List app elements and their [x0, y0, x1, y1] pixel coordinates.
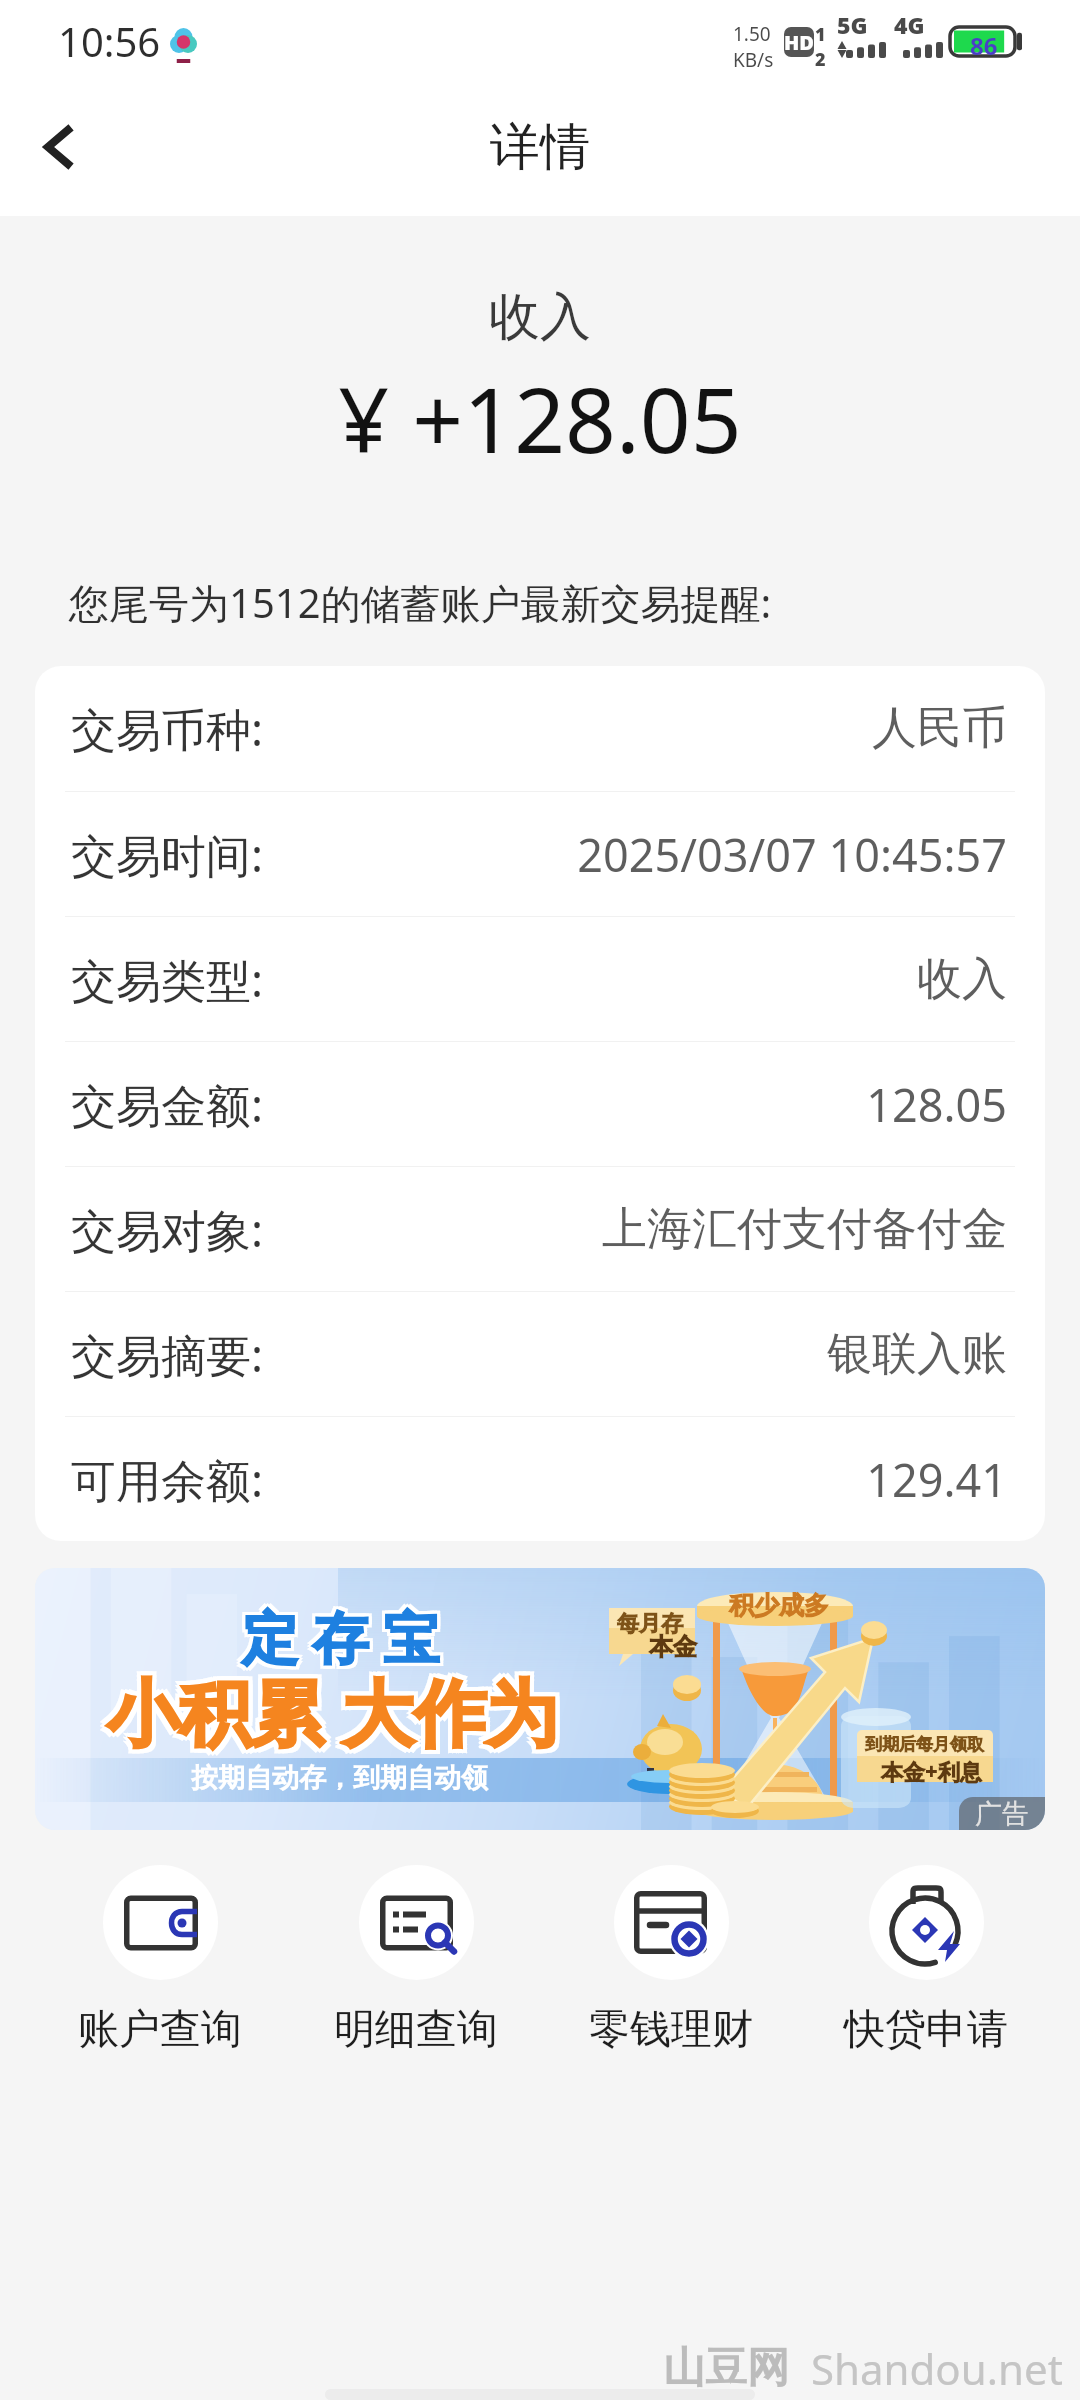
staticText: 按期自动存，到期自动领 [191, 1761, 488, 1795]
staticText: 128.05 [274, 1074, 1007, 1135]
staticText: 4G [894, 9, 925, 40]
staticText: 定 存 宝 [239, 1598, 437, 1674]
staticText: 129.41 [274, 1449, 1007, 1510]
staticText: 定 存 宝 [245, 1601, 443, 1677]
staticText: 快贷申请 [844, 2004, 1008, 2056]
staticText: 86 [970, 29, 998, 60]
staticText: 交易金额: [71, 1074, 264, 1135]
staticText: 上海汇付支付备付金 [274, 1201, 1007, 1258]
staticText: 小积累 大作为 [103, 1666, 554, 1764]
button[interactable]: 每月存 [35, 1568, 1045, 1830]
staticText: 交易时间: [71, 824, 264, 885]
button[interactable]: 账户查询 [50, 1865, 270, 2056]
staticText: 交易币种: [71, 698, 264, 759]
staticText: 到期后每月领取 [865, 1734, 984, 1755]
staticText: 收入 [0, 285, 1080, 349]
staticText: 定 存 宝 [242, 1601, 440, 1677]
staticText: 可用余额: [71, 1449, 264, 1510]
staticText: 山豆网 [663, 2342, 789, 2395]
staticText: 本金+利息 [881, 1756, 982, 1786]
staticText: 积少成多 [729, 1590, 829, 1621]
staticText: 1.50 [733, 21, 771, 47]
staticText: 小积累 大作为 [111, 1666, 562, 1764]
staticText: 2025/03/07 10:45:57 [274, 824, 1007, 885]
staticText: 10:56 [58, 14, 161, 68]
staticText: 定 存 宝 [242, 1598, 440, 1674]
staticText: Shandou.net [811, 2340, 1063, 2397]
staticText: 定 存 宝 [242, 1595, 440, 1671]
staticText: 每月存 [617, 1610, 683, 1638]
staticText: 小积累 大作为 [111, 1658, 562, 1756]
staticText: 定 存 宝 [239, 1601, 437, 1677]
staticText: 小积累 大作为 [107, 1658, 558, 1756]
button[interactable]: Back [14, 103, 104, 193]
staticText: 详情 [490, 116, 590, 179]
staticText: 定 存 宝 [239, 1595, 437, 1671]
staticText: 定 存 宝 [245, 1595, 443, 1671]
staticText: 本金 [649, 1632, 697, 1662]
staticText: 2 [815, 47, 826, 72]
staticText: 账户查询 [78, 2004, 242, 2056]
button[interactable]: 零钱理财 [561, 1865, 781, 2056]
staticText: ¥ +128.05 [0, 358, 1080, 479]
staticText: 零钱理财 [589, 2004, 753, 2056]
staticText: 银联入账 [274, 1326, 1007, 1383]
staticText: 交易类型: [71, 949, 264, 1010]
staticText: 小积累 大作为 [103, 1662, 554, 1760]
staticText: 您尾号为1512的储蓄账户最新交易提醒: [69, 575, 772, 630]
staticText: 小积累 大作为 [107, 1666, 558, 1764]
staticText: 交易摘要: [71, 1324, 264, 1385]
staticText: 小积累 大作为 [103, 1658, 554, 1756]
staticText: 收入 [274, 951, 1007, 1008]
staticText: 交易对象: [71, 1199, 264, 1260]
staticText: 明细查询 [334, 2004, 498, 2056]
staticText: 小积累 大作为 [107, 1662, 558, 1760]
staticText: KB/s [733, 47, 774, 73]
button[interactable]: 快贷申请 [816, 1865, 1036, 2056]
staticText: 定 存 宝 [245, 1598, 443, 1674]
staticText: 小积累 大作为 [111, 1662, 562, 1760]
staticText: HD [784, 29, 814, 56]
staticText: 广告 [975, 1797, 1029, 1830]
staticText: 1 [815, 22, 826, 47]
staticText: 人民币 [274, 700, 1007, 757]
staticText: 5G [837, 9, 868, 40]
button[interactable]: 明细查询 [306, 1865, 526, 2056]
